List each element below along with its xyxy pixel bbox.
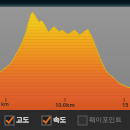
staticText: 10.0km bbox=[55, 101, 75, 108]
button[interactable]: 고도 bbox=[4, 110, 41, 130]
button[interactable]: 웨이포인트 bbox=[77, 110, 126, 130]
button[interactable]: 속도 bbox=[41, 110, 77, 130]
staticText: 속도 bbox=[53, 116, 66, 124]
staticText: 고도 bbox=[16, 116, 29, 124]
staticText: km bbox=[1, 101, 9, 108]
staticText: 15 bbox=[122, 101, 129, 108]
staticText: 웨이포인트 bbox=[89, 116, 122, 124]
